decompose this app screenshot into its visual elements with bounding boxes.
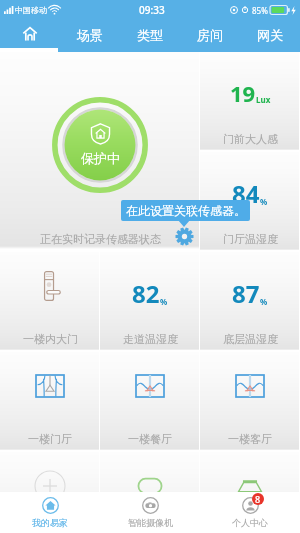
staticText: 我的易家: [32, 517, 68, 528]
button[interactable]: 场景: [60, 20, 120, 52]
staticText: 保护中: [81, 150, 120, 166]
button[interactable]: 在此设置关联传感器。: [121, 200, 250, 221]
button[interactable]: 保护中: [0, 52, 200, 252]
button[interactable]: 我的易家: [0, 492, 100, 533]
staticText: 一楼内大门: [23, 332, 78, 346]
button[interactable]: 8: [200, 492, 300, 533]
button[interactable]: 智能摄像机: [100, 492, 200, 533]
staticText: 智能摄像机: [128, 517, 173, 528]
staticText: 19: [230, 78, 256, 108]
staticText: 09:33: [139, 3, 165, 17]
button[interactable]: 一楼内大门: [0, 252, 100, 352]
button[interactable]: [100, 452, 200, 492]
button[interactable]: 房间: [180, 20, 240, 52]
staticText: %: [160, 296, 168, 307]
staticText: 房间: [197, 27, 223, 43]
staticText: 84: [232, 177, 260, 210]
button[interactable]: 一楼餐厅: [100, 352, 200, 452]
staticText: 门前大人感: [223, 132, 278, 146]
button[interactable]: 87: [200, 252, 300, 352]
staticText: 类型: [137, 27, 163, 43]
staticText: 场景: [77, 27, 103, 43]
button[interactable]: 类型: [120, 20, 180, 52]
staticText: Lux: [256, 94, 271, 105]
button[interactable]: 网关: [240, 20, 300, 52]
staticText: 中国移动: [15, 5, 47, 15]
staticText: 87: [232, 277, 260, 310]
staticText: 8: [255, 493, 261, 505]
staticText: 82: [132, 277, 160, 310]
staticText: %: [260, 196, 268, 207]
button[interactable]: 82: [100, 252, 200, 352]
button[interactable]: 一楼客厅: [200, 352, 300, 452]
button[interactable]: 一楼门厅: [0, 352, 100, 452]
staticText: 正在实时记录传感器状态: [40, 232, 161, 246]
staticText: 一楼餐厅: [128, 432, 172, 446]
staticText: 一楼客厅: [228, 432, 272, 446]
button[interactable]: 19: [200, 52, 300, 152]
button[interactable]: 84: [200, 152, 300, 252]
staticText: 门厅温湿度: [223, 232, 278, 246]
button[interactable]: 首页: [0, 20, 60, 52]
staticText: 底层温湿度: [223, 332, 278, 346]
staticText: 一楼门厅: [28, 432, 72, 446]
staticText: 85%: [252, 5, 268, 16]
staticText: 在此设置关联传感器。: [126, 203, 246, 218]
staticText: %: [260, 296, 268, 307]
staticText: 走道温湿度: [123, 332, 178, 346]
staticText: 网关: [257, 27, 283, 43]
staticText: 个人中心: [232, 517, 268, 528]
button[interactable]: [0, 452, 100, 492]
button[interactable]: [200, 452, 300, 492]
button[interactable]: 设置: [175, 227, 194, 246]
